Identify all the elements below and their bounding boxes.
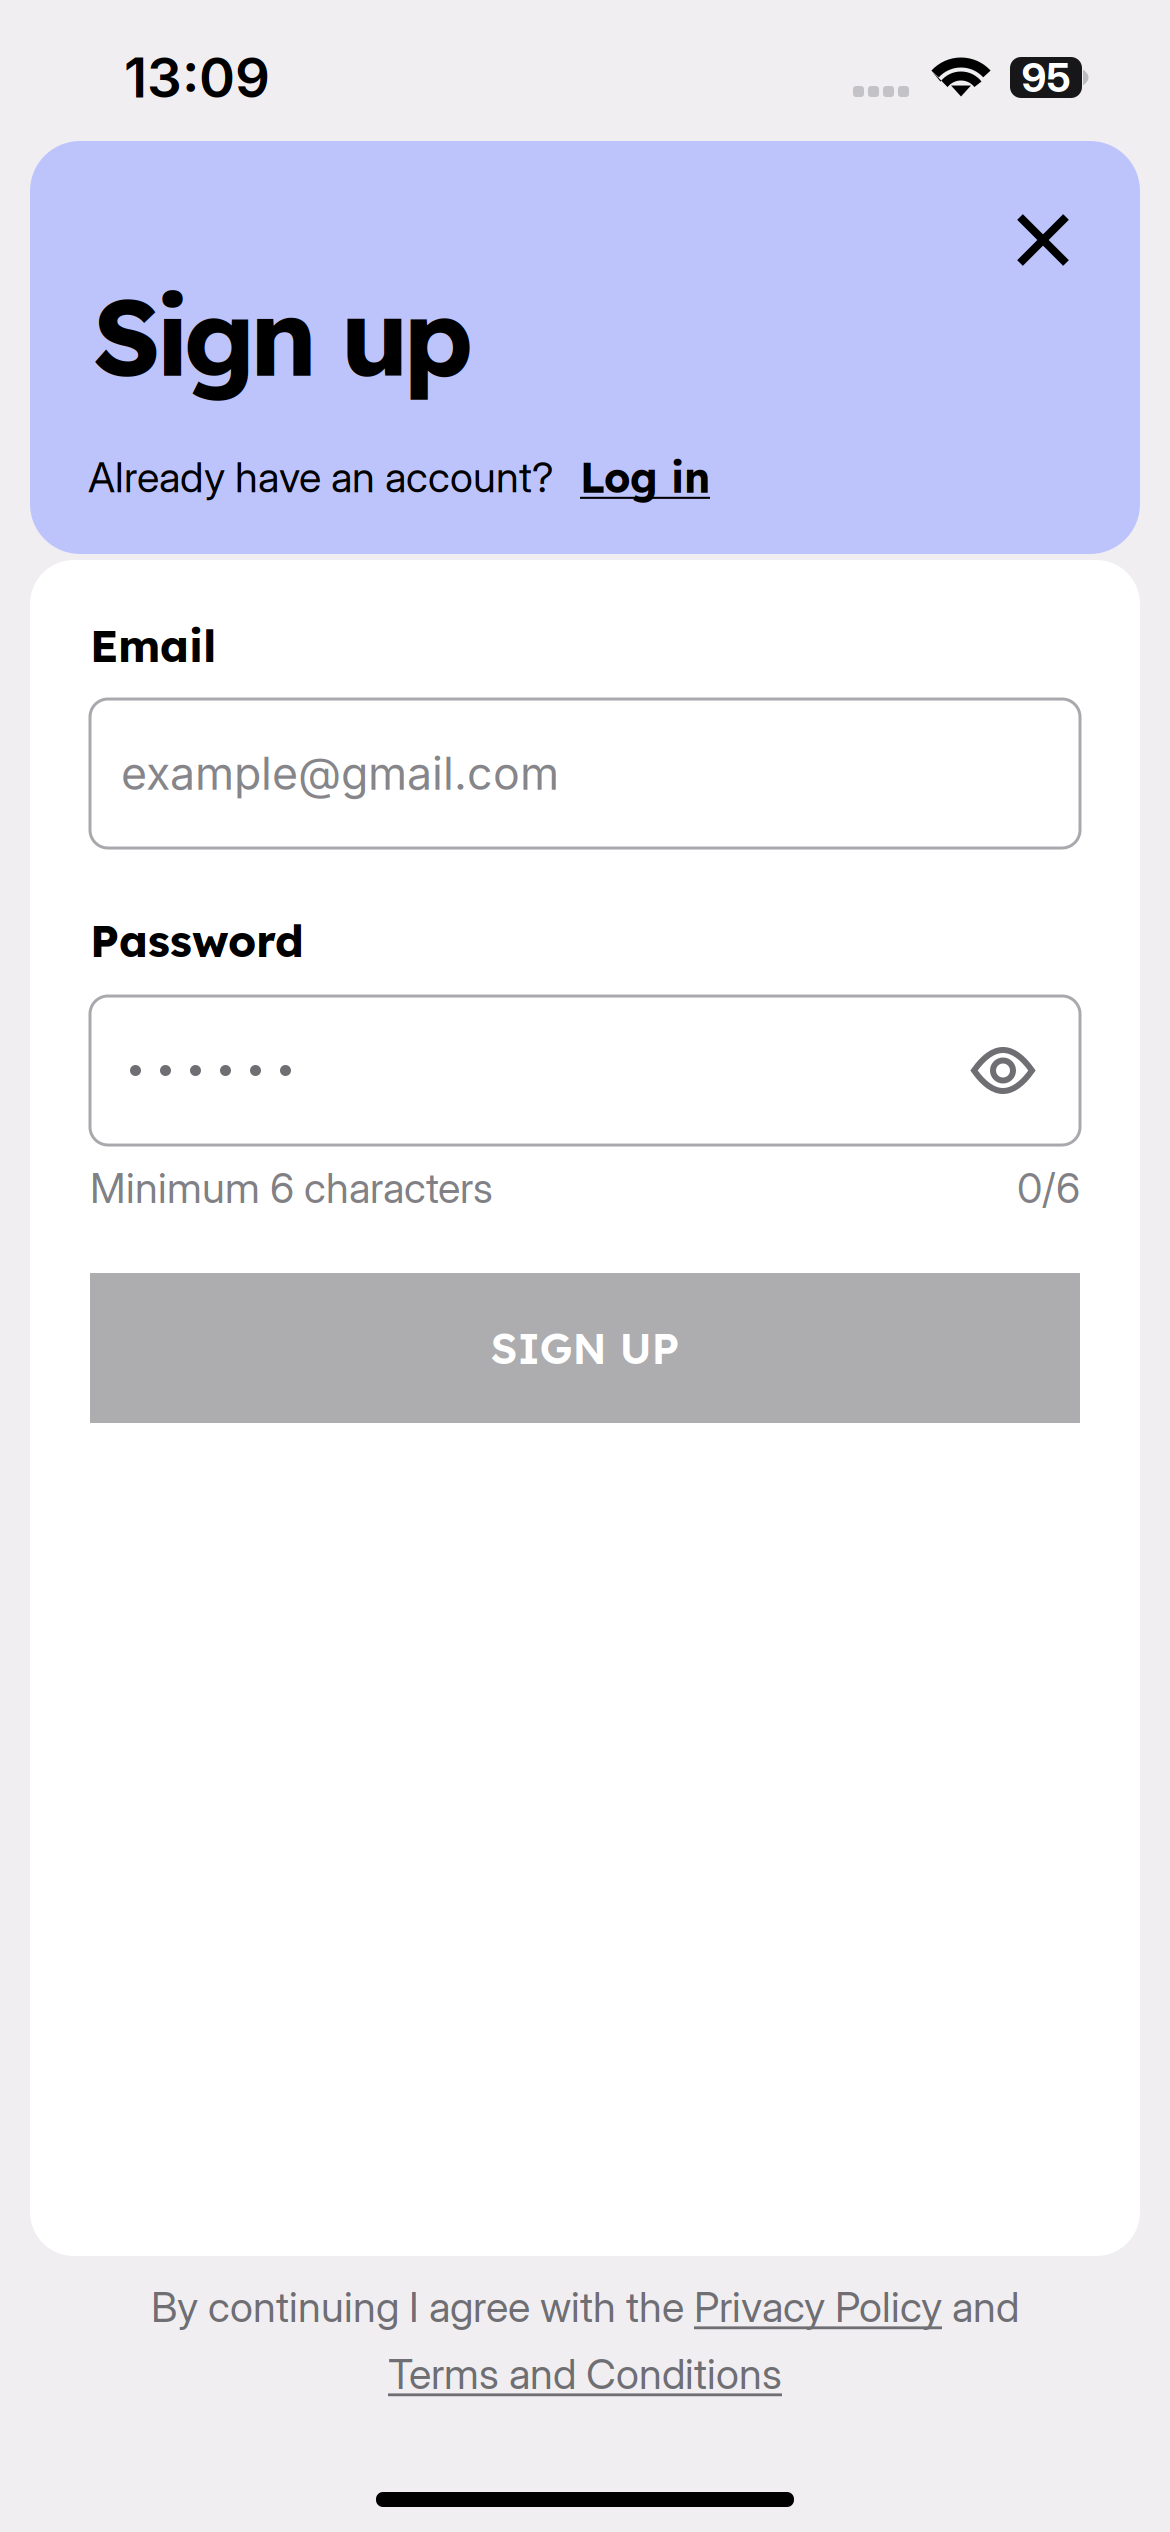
button[interactable]: Privacy Policy	[694, 2282, 942, 2332]
button[interactable]: SIGN UP	[90, 1273, 1080, 1423]
staticText: Minimum 6 characters	[90, 1163, 493, 1213]
staticText: By continuing I agree with the	[151, 2282, 694, 2332]
staticText: 13:09	[124, 44, 270, 110]
staticText: 95	[1021, 53, 1070, 102]
button[interactable]: Log in	[580, 451, 710, 503]
staticText: Password	[90, 913, 304, 968]
staticText: Sign up	[93, 269, 473, 402]
staticText: SIGN UP	[490, 1321, 679, 1375]
staticText: Email	[90, 618, 216, 673]
staticText: Terms and Conditions	[388, 2349, 782, 2399]
staticText: and	[942, 2282, 1019, 2332]
staticText: Privacy Policy	[694, 2282, 942, 2332]
button[interactable]: Terms and Conditions	[388, 2349, 782, 2399]
staticText: Log in	[580, 451, 710, 503]
button[interactable]: Show password	[971, 1045, 1035, 1095]
button[interactable]: Close	[996, 193, 1090, 287]
staticText: Already have an account?	[88, 452, 554, 502]
staticText: example@gmail.com	[121, 746, 559, 800]
staticText: 0/6	[1017, 1163, 1080, 1213]
